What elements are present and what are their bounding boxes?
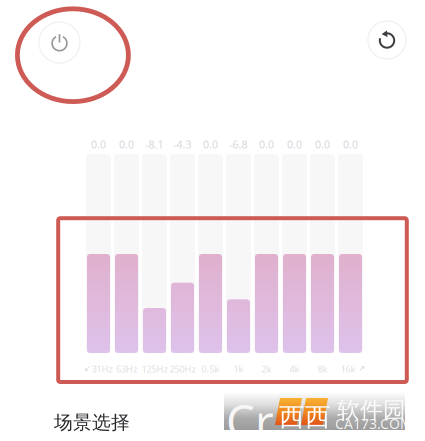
staticText: 软件园 [337, 396, 406, 425]
staticText: 16k [340, 363, 355, 375]
staticText: 0.0 [259, 137, 274, 151]
staticText: 1k [233, 363, 243, 375]
staticText: -6.8 [229, 137, 247, 151]
staticText: 0.0 [91, 137, 106, 151]
staticText: 125Hz [141, 363, 167, 375]
staticText: 31Hz [91, 363, 112, 375]
button[interactable]: Power [39, 22, 80, 63]
staticText: 2k [261, 363, 271, 375]
staticText: 0.5k [201, 363, 219, 375]
staticText: 场景选择 [54, 411, 130, 434]
staticText: 0.0 [119, 137, 134, 151]
staticText: 0.0 [315, 137, 330, 151]
staticText: 0.0 [287, 137, 302, 151]
staticText: 西 [305, 401, 330, 433]
staticText: 西 [279, 401, 304, 433]
staticText: -8.1 [145, 137, 163, 151]
staticText: 250Hz [169, 363, 195, 375]
staticText: -4.3 [173, 137, 191, 151]
staticText: 4k [289, 363, 299, 375]
staticText: 8k [317, 363, 327, 375]
button[interactable]: Reset [368, 21, 406, 59]
staticText: 0.0 [203, 137, 218, 151]
staticText: 63Hz [116, 363, 137, 375]
staticText: Cr [226, 390, 274, 441]
staticText: CA173.COM [335, 414, 413, 433]
staticText: 0.0 [343, 137, 358, 151]
